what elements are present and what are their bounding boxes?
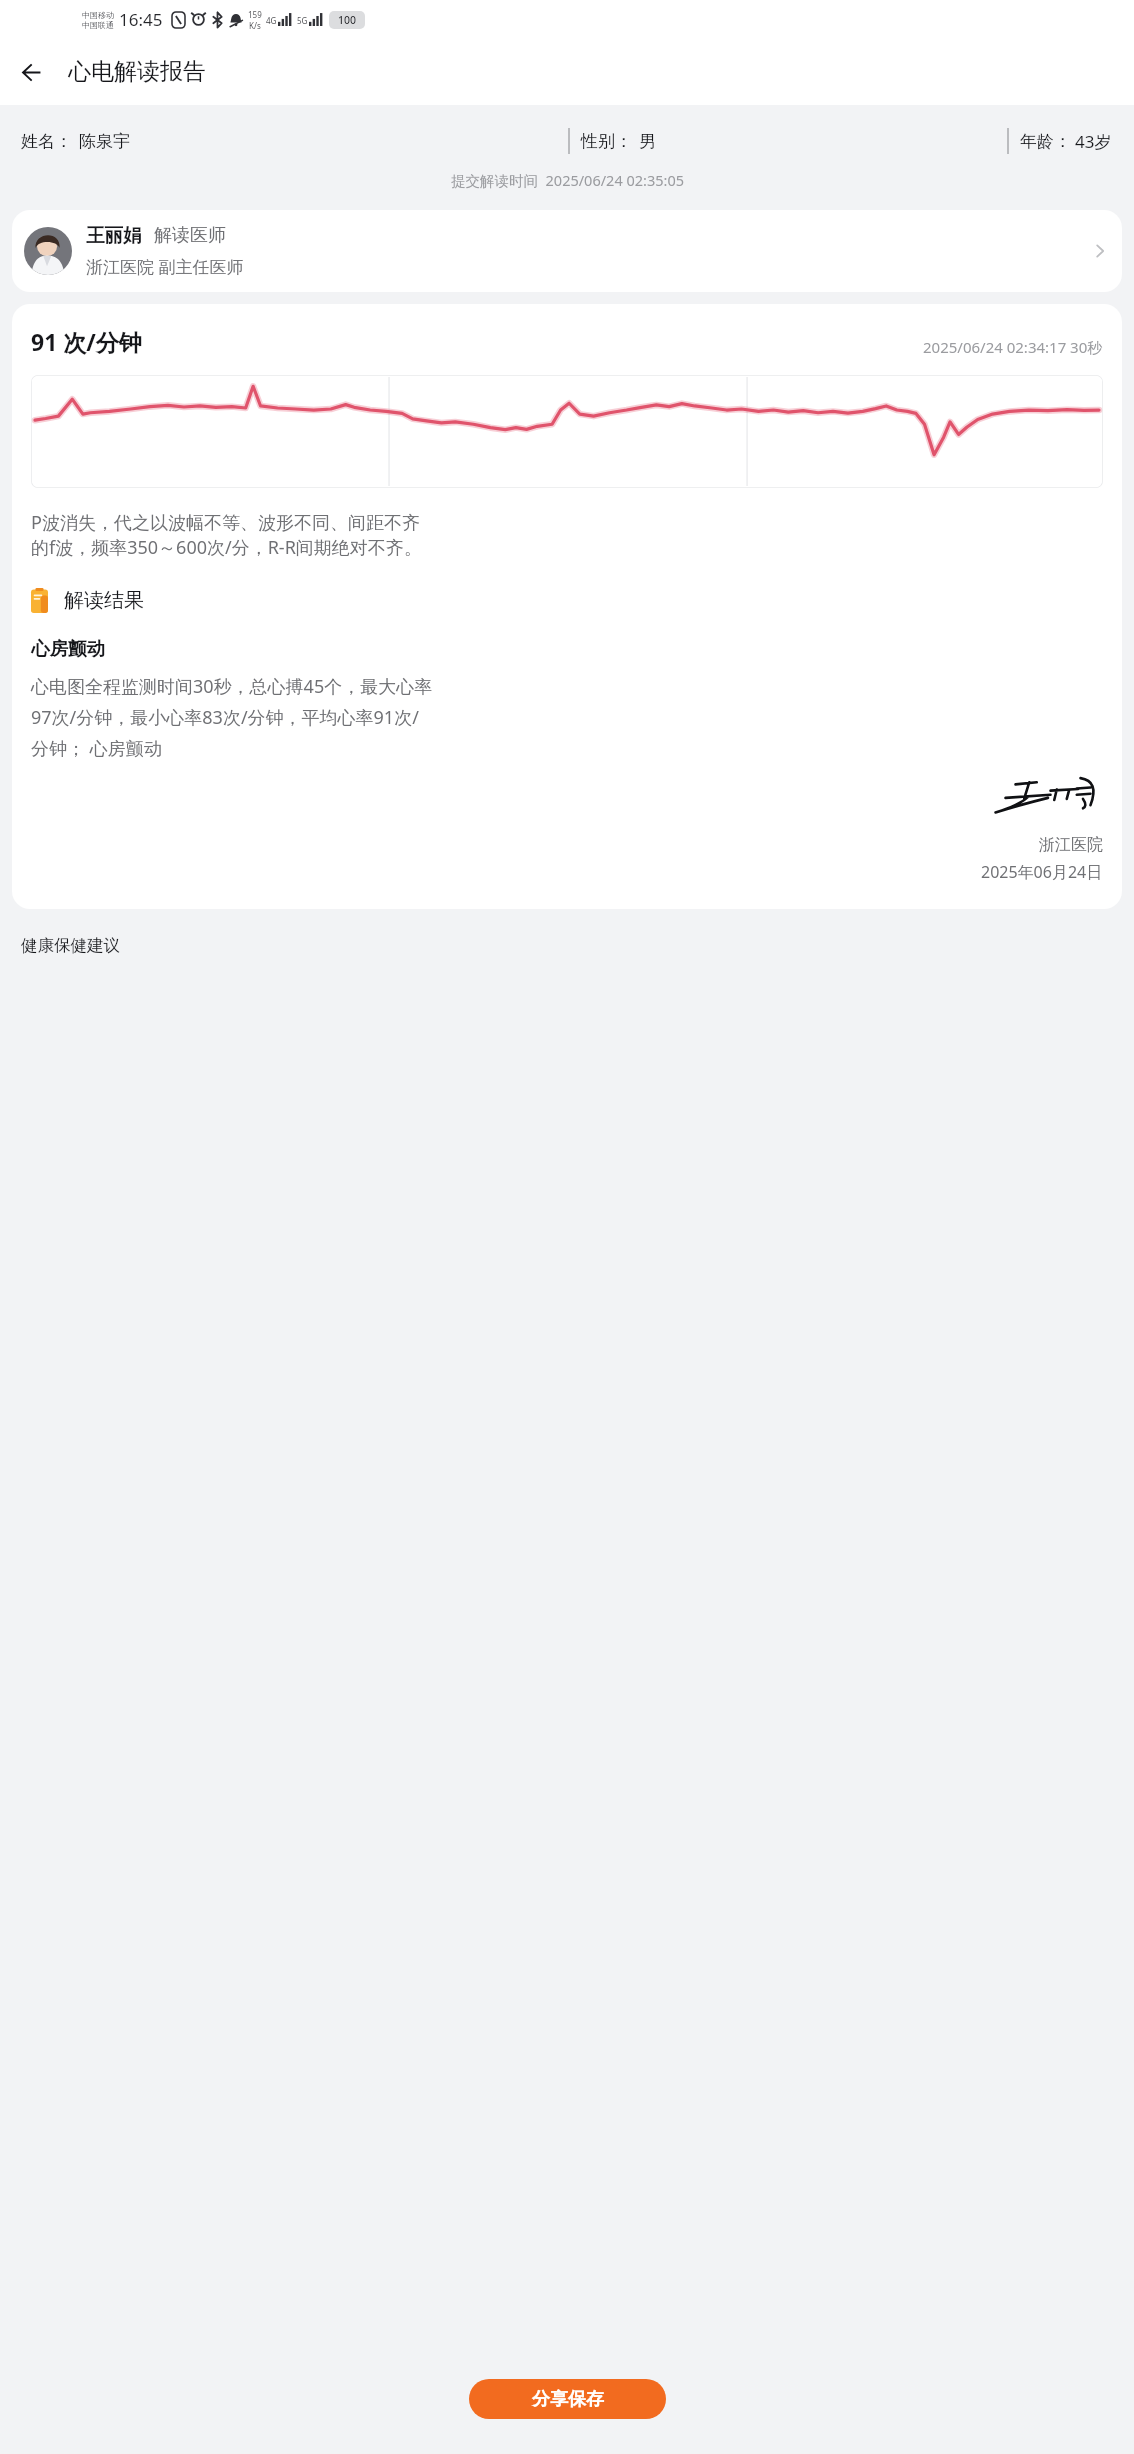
staticText: 解读结果 (64, 588, 144, 613)
staticText: 心房颤动 (31, 637, 105, 660)
staticText: 提交解读时间 2025/06/24 02:35:05 (451, 170, 684, 190)
staticText: 91 次/分钟 (31, 326, 142, 357)
staticText: 43岁 (1075, 130, 1112, 153)
staticText: 4G (266, 15, 277, 26)
button[interactable]: 王丽娟 (12, 210, 1122, 292)
staticText: 分钟； 心房颤动 (31, 736, 162, 761)
staticText: 16:45 (119, 8, 163, 31)
staticText: 浙江医院 (1039, 835, 1103, 855)
staticText: 姓名： (21, 131, 72, 152)
staticText: 97次/分钟，最小心率83次/分钟，平均心率91次/ (31, 705, 419, 730)
staticText: 性别： (581, 131, 632, 152)
button[interactable]: 分享保存 (469, 2379, 666, 2419)
staticText: 健康保健建议 (21, 935, 120, 956)
staticText: P波消失，代之以波幅不等、波形不同、间距不齐 (31, 510, 420, 535)
staticText: 陈泉宇 (79, 131, 130, 152)
staticText: 2025/06/24 02:34:17 30秒 (923, 337, 1103, 357)
staticText: 5G (297, 15, 308, 26)
staticText: 浙江医院 副主任医师 (86, 255, 244, 278)
staticText: 王丽娟 (86, 224, 142, 247)
staticText: 100 (338, 13, 357, 27)
staticText: 分享保存 (532, 2388, 604, 2411)
staticText: 解读医师 (154, 224, 226, 247)
staticText: 年龄： (1020, 131, 1071, 152)
staticText: 心电解读报告 (68, 57, 206, 86)
staticText: 心电图全程监测时间30秒，总心搏45个，最大心率 (31, 674, 433, 699)
button[interactable]: Back (8, 48, 56, 96)
staticText: 男 (639, 131, 656, 152)
staticText: 中国移动 (82, 10, 114, 20)
staticText: K/s (249, 20, 261, 31)
staticText: 中国联通 (82, 20, 114, 30)
staticText: 159 (248, 9, 262, 20)
staticText: 2025年06月24日 (981, 861, 1103, 883)
staticText: 的f波，频率350～600次/分，R-R间期绝对不齐。 (31, 535, 422, 560)
